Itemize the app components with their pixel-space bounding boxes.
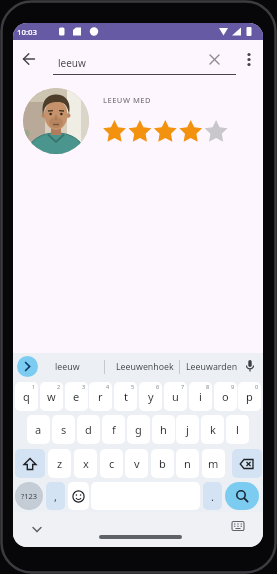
staticText: o: [222, 389, 229, 404]
button[interactable]: [40, 382, 63, 411]
button[interactable]: m: [202, 449, 225, 478]
button[interactable]: [240, 51, 258, 69]
button[interactable]: a: [27, 415, 50, 444]
staticText: g: [135, 422, 142, 437]
staticText: m: [208, 456, 219, 471]
button[interactable]: j: [176, 415, 199, 444]
button[interactable]: [65, 382, 88, 411]
staticText: 1: [32, 383, 36, 390]
button[interactable]: [15, 382, 38, 411]
button[interactable]: [139, 382, 162, 411]
staticText: 9: [231, 383, 235, 390]
button[interactable]: [15, 449, 45, 478]
staticText: f: [112, 422, 116, 437]
staticText: a: [35, 422, 42, 437]
button[interactable]: ?123: [15, 482, 43, 510]
button[interactable]: s: [52, 415, 75, 444]
staticText: 2: [57, 383, 61, 390]
button[interactable]: leeuw: [42, 357, 92, 377]
button[interactable]: d: [77, 415, 100, 444]
button[interactable]: [189, 382, 212, 411]
staticText: r: [98, 389, 103, 404]
staticText: k: [210, 422, 216, 437]
staticText: i: [199, 389, 202, 404]
staticText: h: [160, 422, 167, 437]
staticText: ?123: [21, 491, 38, 501]
button[interactable]: [206, 51, 223, 68]
button[interactable]: c: [100, 449, 123, 478]
button[interactable]: b: [151, 449, 174, 478]
staticText: q: [23, 389, 30, 404]
button[interactable]: [238, 382, 261, 411]
staticText: Leeuwenhoek: [116, 361, 174, 373]
staticText: l: [236, 422, 239, 437]
button[interactable]: [68, 482, 89, 510]
staticText: x: [83, 456, 89, 471]
staticText: n: [184, 456, 191, 471]
button[interactable]: ,: [46, 482, 65, 510]
button[interactable]: [114, 382, 137, 411]
button[interactable]: z: [48, 449, 71, 478]
button[interactable]: [17, 47, 41, 71]
button[interactable]: v: [125, 449, 148, 478]
staticText: u: [172, 389, 179, 404]
staticText: p: [246, 389, 253, 404]
button[interactable]: [29, 521, 45, 537]
staticText: 6: [156, 383, 160, 390]
staticText: .: [211, 489, 214, 504]
button[interactable]: x: [74, 449, 97, 478]
button[interactable]: g: [127, 415, 150, 444]
staticText: j: [186, 422, 189, 437]
staticText: 5: [131, 383, 135, 390]
staticText: 7: [181, 383, 185, 390]
staticText: 3: [82, 383, 86, 390]
button[interactable]: [242, 358, 258, 374]
staticText: Leeuwarden: [186, 361, 238, 373]
staticText: v: [134, 456, 140, 471]
staticText: ,: [54, 489, 57, 504]
staticText: leeuw: [55, 361, 80, 373]
button[interactable]: [89, 382, 112, 411]
button[interactable]: l: [226, 415, 249, 444]
button[interactable]: [164, 382, 187, 411]
button[interactable]: k: [201, 415, 224, 444]
staticText: c: [109, 456, 115, 471]
button[interactable]: [232, 449, 262, 478]
button[interactable]: [225, 482, 259, 510]
button[interactable]: Leeuwenhoek: [110, 357, 180, 377]
staticText: z: [57, 456, 63, 471]
button[interactable]: h: [152, 415, 175, 444]
staticText: t: [124, 389, 128, 404]
staticText: 4: [106, 383, 110, 390]
button[interactable]: n: [176, 449, 199, 478]
staticText: 0: [255, 383, 259, 390]
staticText: 10:03: [17, 27, 37, 38]
staticText: d: [85, 422, 92, 437]
staticText: 8: [206, 383, 210, 390]
button[interactable]: .: [203, 482, 222, 510]
button[interactable]: LEEUW MED: [13, 77, 263, 177]
staticText: b: [159, 456, 166, 471]
staticText: LEEUW MED: [103, 95, 151, 105]
button[interactable]: f: [102, 415, 125, 444]
staticText: e: [73, 389, 80, 404]
staticText: leeuw: [58, 56, 86, 70]
staticText: w: [47, 389, 56, 404]
button[interactable]: [230, 518, 246, 534]
button[interactable]: Leeuwarden: [182, 357, 242, 377]
staticText: y: [148, 389, 154, 404]
button[interactable]: [214, 382, 237, 411]
button[interactable]: [17, 356, 38, 377]
staticText: s: [61, 422, 67, 437]
